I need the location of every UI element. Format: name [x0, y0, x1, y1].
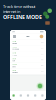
button[interactable]: More [39, 91, 46, 100]
staticText: Design [12, 42, 17, 44]
staticText: Review [12, 71, 17, 73]
staticText: internet in [3, 9, 20, 14]
staticText: Acme [12, 40, 16, 42]
staticText: Team [12, 46, 16, 48]
staticText: Orbit [12, 58, 15, 60]
staticText: 0:15 [40, 47, 43, 49]
button[interactable]: Start timer [36, 82, 44, 90]
button[interactable]: Projects [24, 91, 32, 100]
button[interactable]: Team [32, 91, 39, 100]
staticText: Team [12, 64, 16, 65]
button[interactable]: Profile [39, 34, 44, 39]
button[interactable]: Team [10, 63, 46, 68]
staticText: 9:41 [12, 31, 15, 33]
staticText: Standup [12, 48, 19, 50]
button[interactable]: Orbit [10, 68, 46, 74]
staticText: Acme [12, 52, 16, 54]
staticText: Track time without [3, 4, 35, 9]
button[interactable]: Team [10, 45, 46, 51]
staticText: Orbit [12, 69, 15, 71]
staticText: 0:30 [40, 65, 43, 66]
staticText: 0:45 [40, 59, 43, 61]
staticText: Call [12, 60, 14, 62]
button[interactable]: Timer [10, 91, 17, 100]
staticText: 2:03 [40, 53, 43, 55]
staticText: Docs [12, 66, 16, 68]
button[interactable]: Acme [10, 39, 46, 45]
staticText: OFFLINE MODE [3, 13, 42, 21]
staticText: 1:10 [40, 70, 43, 72]
button[interactable]: Orbit [10, 57, 46, 63]
staticText: 1:24 [40, 41, 43, 43]
button[interactable]: Acme [10, 51, 46, 57]
button[interactable]: Reports [17, 91, 24, 100]
staticText: Timer [26, 36, 30, 37]
staticText: Triage [12, 54, 17, 56]
button[interactable]: Menu [12, 34, 17, 39]
